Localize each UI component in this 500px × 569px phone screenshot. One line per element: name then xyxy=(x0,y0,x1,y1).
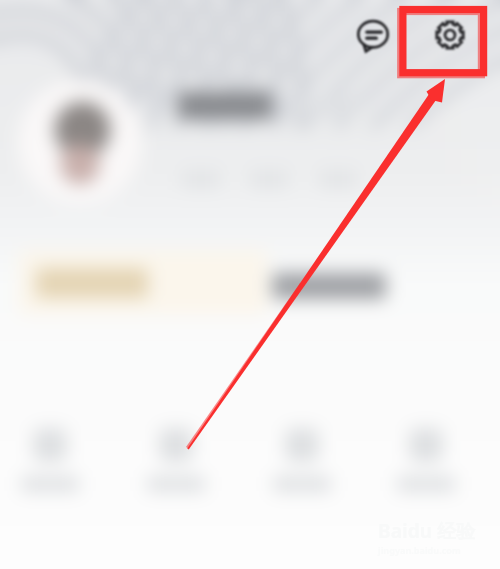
button[interactable]: Membership xyxy=(36,268,148,298)
button[interactable] xyxy=(239,428,365,492)
button[interactable]: Profile photo xyxy=(18,80,142,204)
button[interactable] xyxy=(365,428,487,492)
button[interactable]: Messages xyxy=(352,14,394,56)
button[interactable] xyxy=(113,428,239,492)
button[interactable]: Settings xyxy=(429,14,471,56)
button[interactable] xyxy=(0,428,113,492)
